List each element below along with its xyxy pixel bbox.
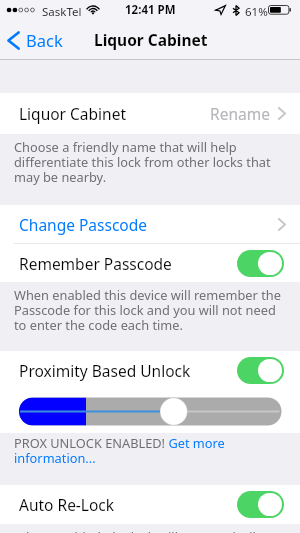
button[interactable]: Auto Re-Lock toggle [237,491,284,518]
button[interactable]: Remember Passcode [0,244,300,282]
button[interactable]: Proximity range slider [0,390,300,433]
staticText: Auto Re-Lock [19,494,115,515]
staticText: Remember Passcode [19,253,172,274]
staticText: Proximity Based Unlock [19,360,191,381]
staticText: SaskTel [42,4,82,20]
button[interactable]: Back [0,20,73,60]
button[interactable]: Auto Re-Lock [0,485,300,524]
staticText: 12:41 PM [125,2,176,18]
staticText: Back [26,29,63,51]
button[interactable]: Proximity Based Unlock [0,351,300,390]
staticText: Change Passcode [19,214,147,235]
staticText: Liquor Cabinet [94,29,208,50]
staticText: When enabled this device will remember t… [14,286,287,334]
button[interactable]: Liquor Cabinet [0,93,300,134]
staticText: When enabled, the lock will automaticall… [14,528,287,533]
staticText: Rename [210,103,270,124]
button[interactable]: Remember Passcode toggle [237,250,284,277]
staticText: 61% [245,4,268,20]
button[interactable]: Change Passcode [0,205,300,243]
button[interactable]: Proximity Based Unlock toggle [237,357,284,384]
button[interactable]: PROX UNLOCK ENABLED! Get more informatio… [14,434,287,467]
staticText: Choose a friendly name that will help di… [14,138,287,186]
staticText: Liquor Cabinet [19,103,126,124]
